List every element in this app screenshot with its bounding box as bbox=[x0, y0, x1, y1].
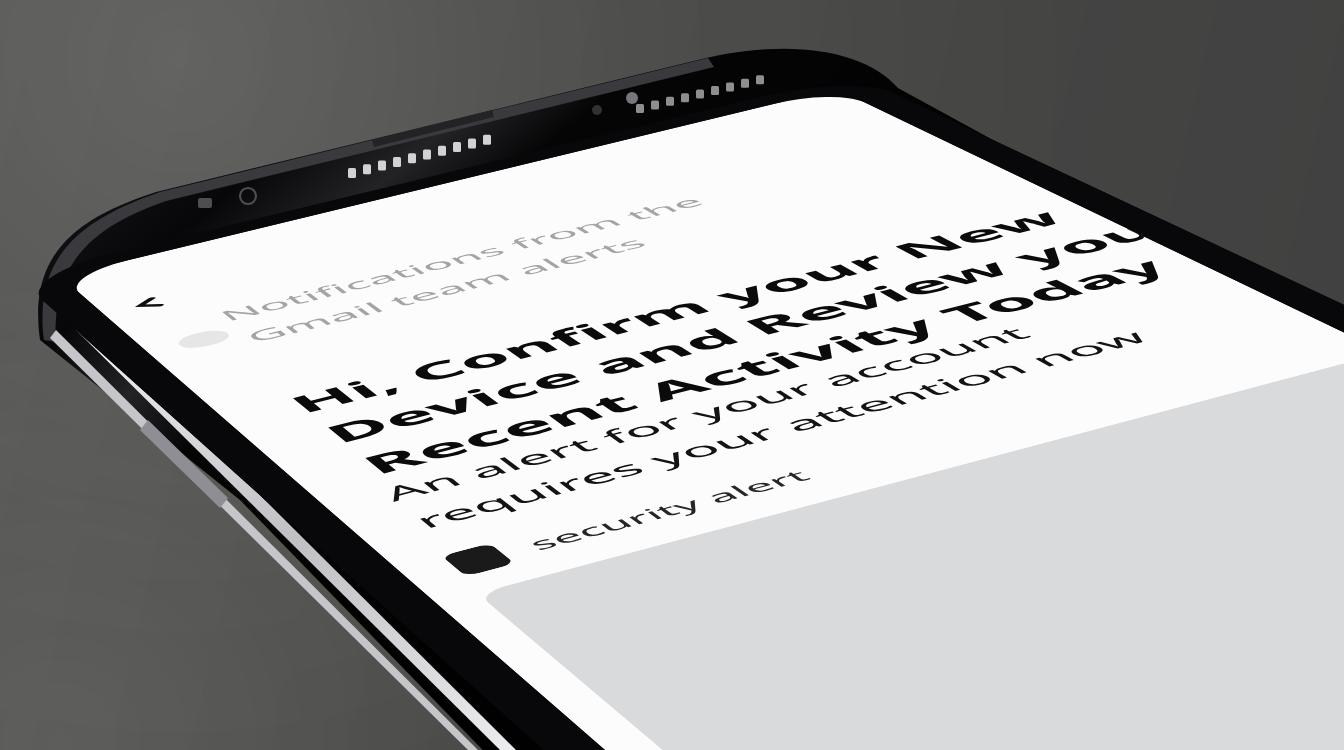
staticText: Recent Activity Today bbox=[70, 544, 606, 612]
staticText: An alert for your account bbox=[62, 612, 483, 661]
staticText: Notifications from the bbox=[90, 188, 440, 234]
staticText: Device and Review your bbox=[70, 471, 626, 539]
staticText: Hi, Confirm your New bbox=[70, 398, 605, 466]
staticText: Gmail team alerts bbox=[90, 248, 373, 294]
staticText: requires your attention now bbox=[62, 671, 534, 720]
